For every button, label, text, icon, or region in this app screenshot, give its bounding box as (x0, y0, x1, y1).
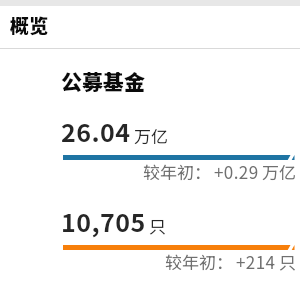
staticText: 只 (149, 213, 166, 238)
staticText: 较年初： (143, 159, 211, 184)
staticText: +0.29 (214, 159, 259, 184)
staticText: 公募基金 (61, 66, 145, 96)
staticText: 只 (279, 249, 296, 274)
staticText: 较年初： (165, 249, 233, 274)
staticText: 10,705 (61, 203, 146, 239)
staticText: +214 (236, 249, 276, 274)
button[interactable]: 概览 (0, 6, 300, 47)
staticText: 26.04 (61, 113, 131, 149)
staticText: 万亿 (262, 159, 296, 184)
staticText: 概览 (10, 11, 49, 39)
staticText: 万亿 (134, 123, 168, 148)
